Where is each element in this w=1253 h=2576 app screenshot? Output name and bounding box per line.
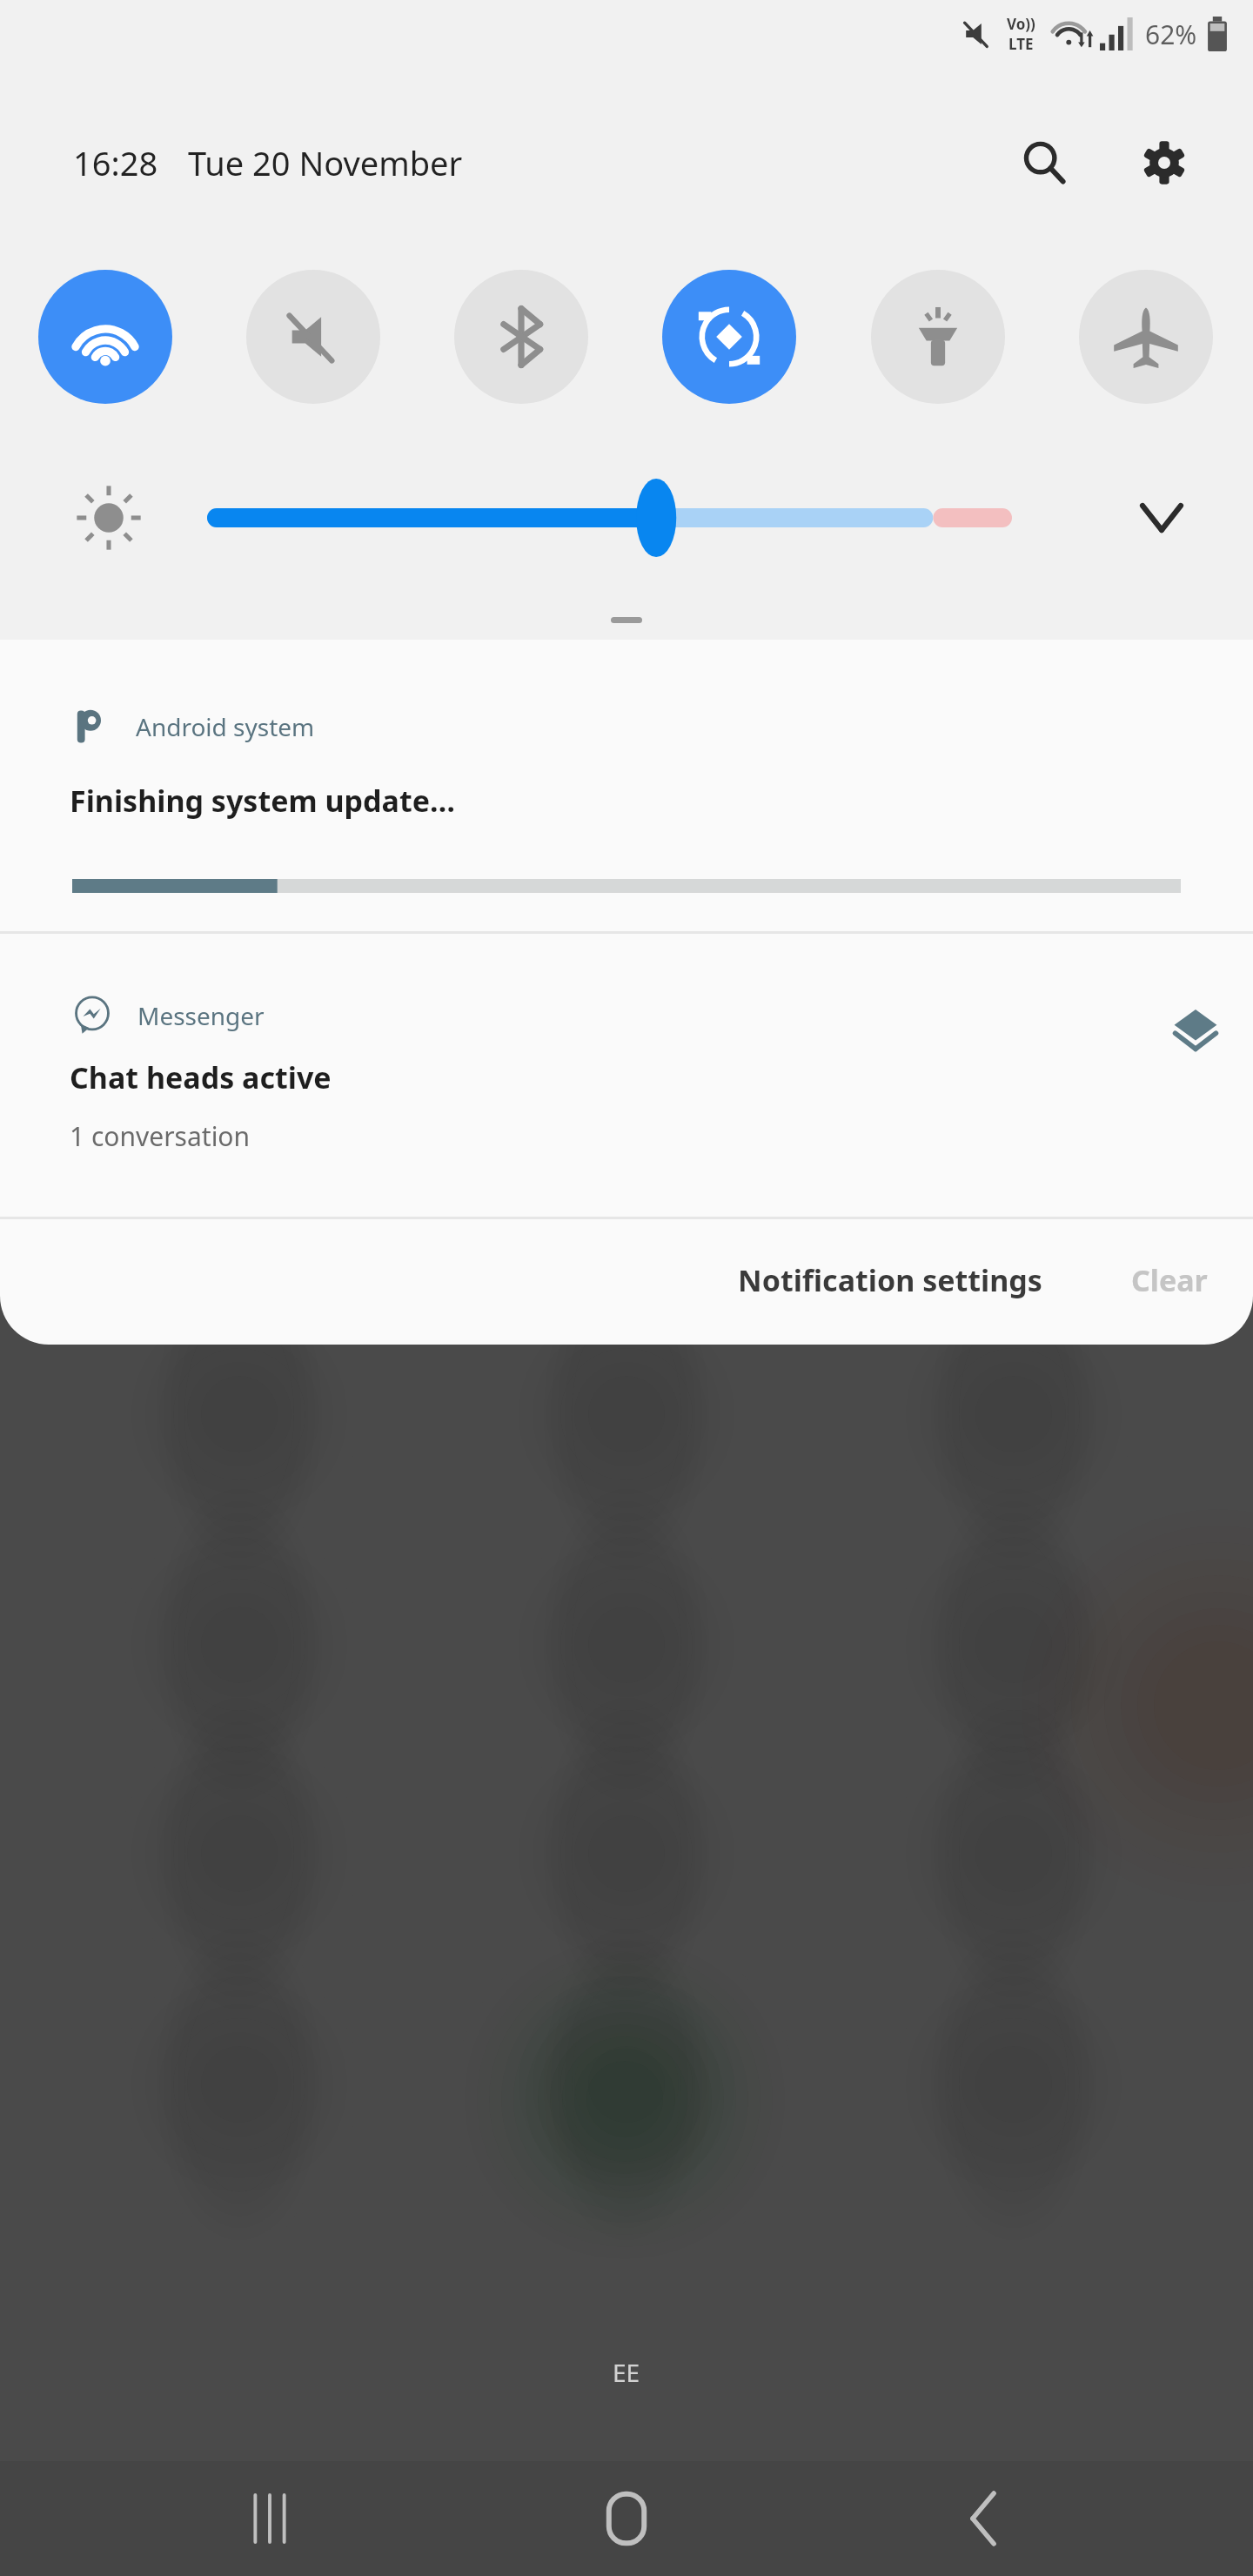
- button[interactable]: Search: [1002, 121, 1086, 205]
- staticText: LTE: [1008, 34, 1034, 54]
- button[interactable]: Notification settings: [738, 1260, 1042, 1300]
- staticText: Android system: [136, 710, 315, 743]
- button[interactable]: Settings: [1122, 121, 1206, 205]
- button[interactable]: Group notifications: [1161, 995, 1230, 1064]
- button[interactable]: Airplane mode: [1079, 270, 1213, 404]
- staticText: Finishing system update…: [70, 781, 456, 821]
- button[interactable]: Messenger: [0, 934, 1253, 1217]
- staticText: 16:28: [73, 140, 158, 185]
- staticText: Chat heads active: [70, 1057, 332, 1097]
- button[interactable]: [207, 508, 1012, 527]
- button[interactable]: Auto rotate: [662, 270, 796, 404]
- button[interactable]: Back: [896, 2461, 1070, 2576]
- staticText: Tue 20 November: [188, 140, 463, 185]
- button[interactable]: Recents: [183, 2461, 357, 2576]
- button[interactable]: Clear: [1131, 1260, 1208, 1300]
- staticText: Messenger: [137, 999, 265, 1032]
- staticText: Clear: [1131, 1260, 1208, 1300]
- button[interactable]: Expand: [1124, 480, 1199, 555]
- staticText: 1 conversation: [70, 1118, 251, 1154]
- button[interactable]: Wi-Fi: [38, 270, 172, 404]
- button[interactable]: Home: [539, 2461, 714, 2576]
- button[interactable]: Bluetooth: [454, 270, 588, 404]
- staticText: Notification settings: [738, 1260, 1042, 1300]
- button[interactable]: Flashlight: [871, 270, 1005, 404]
- staticText: Vo)): [1007, 14, 1035, 34]
- staticText: 62%: [1145, 17, 1197, 52]
- button[interactable]: Android system: [0, 640, 1253, 931]
- button[interactable]: Sound off: [246, 270, 380, 404]
- staticText: EE: [613, 2356, 640, 2389]
